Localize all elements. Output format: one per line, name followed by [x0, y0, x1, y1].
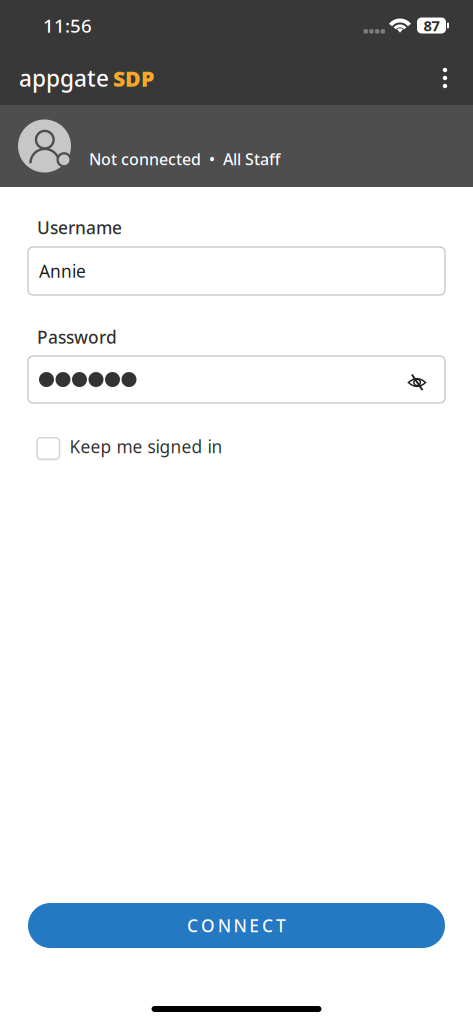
button[interactable]: Not connected • All Staff	[0, 105, 473, 187]
staticText: Password	[37, 325, 117, 348]
staticText: Username	[37, 216, 122, 239]
staticText: SDP	[113, 64, 154, 93]
button[interactable]: More options	[422, 51, 468, 105]
button[interactable]: CONNECT	[28, 903, 445, 948]
staticText: Keep me signed in	[69, 435, 222, 458]
staticText: 11:56	[43, 13, 92, 38]
button[interactable]: Show password	[404, 357, 434, 402]
staticText: Annie	[39, 259, 86, 282]
staticText: Not connected • All Staff	[89, 148, 280, 170]
staticText: 87	[423, 16, 439, 35]
button[interactable]: Keep me signed in	[0, 432, 473, 466]
staticText: appgate	[19, 63, 109, 93]
staticText: CONNECT	[187, 914, 286, 937]
